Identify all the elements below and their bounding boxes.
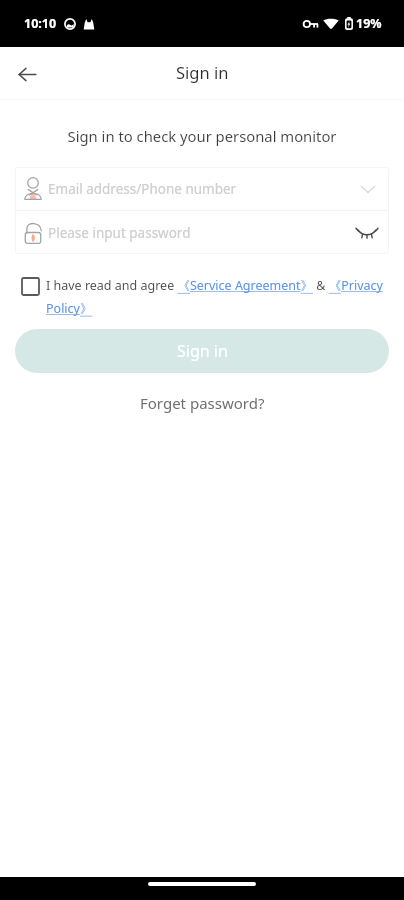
staticText: Sign in to check your personal monitor (0, 126, 404, 146)
staticText: Please input password (48, 224, 354, 242)
staticText: Sign in (177, 340, 228, 362)
button[interactable]: Please input password (15, 211, 389, 254)
staticText: 19% (356, 15, 382, 32)
staticText: I have read and agree 《Service Agreement… (46, 277, 398, 317)
button[interactable]: Show saved accounts (356, 177, 380, 201)
button[interactable]: Back (9, 56, 45, 92)
staticText: 10:10 (24, 15, 57, 32)
button[interactable]: Forget password? (130, 388, 275, 418)
button[interactable]: Email address/Phone number (15, 167, 389, 210)
staticText: Sign in (176, 61, 229, 83)
button[interactable]: Agree to terms (22, 278, 39, 295)
staticText: Email address/Phone number (48, 180, 356, 198)
button[interactable]: Show password (354, 220, 380, 246)
button[interactable]: Sign in (15, 329, 389, 373)
